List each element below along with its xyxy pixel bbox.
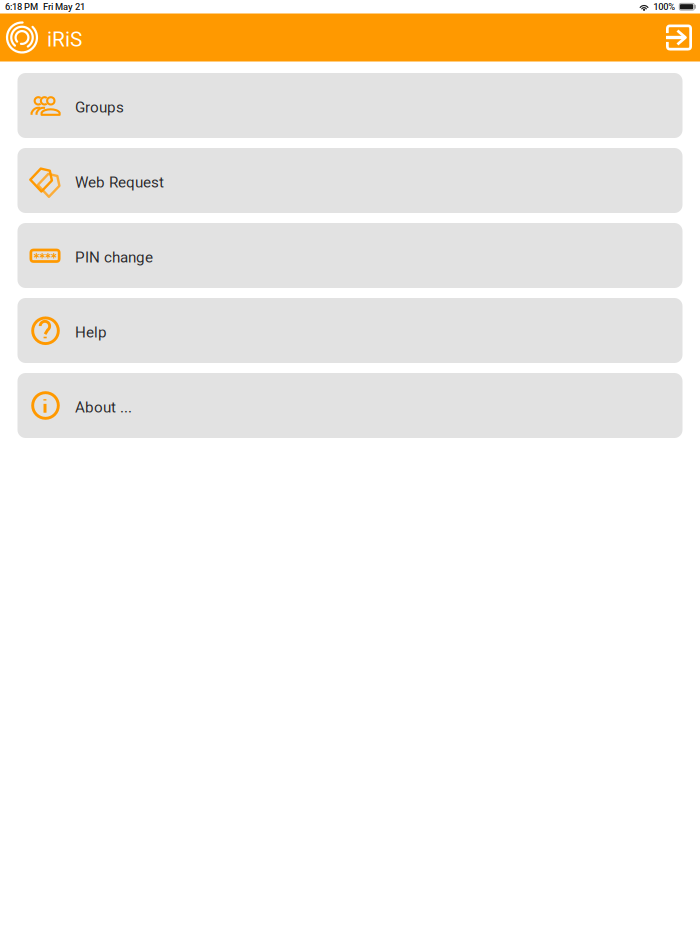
button[interactable]: Web Request [17, 148, 682, 213]
button[interactable]: Log out [657, 15, 700, 59]
button[interactable]: PIN change [17, 223, 682, 288]
staticText: Web Request [75, 173, 164, 191]
button[interactable]: Help [17, 298, 682, 363]
staticText: 100% [653, 1, 675, 12]
staticText: About ... [75, 398, 132, 416]
staticText: PIN change [75, 248, 153, 266]
button[interactable]: Groups [17, 73, 682, 138]
button[interactable]: About ... [17, 373, 682, 438]
staticText: 6:18 PM [5, 1, 38, 12]
staticText: Groups [75, 98, 124, 116]
staticText: iRiS [47, 27, 82, 52]
staticText: Help [75, 323, 107, 341]
staticText: Fri May 21 [43, 1, 85, 12]
